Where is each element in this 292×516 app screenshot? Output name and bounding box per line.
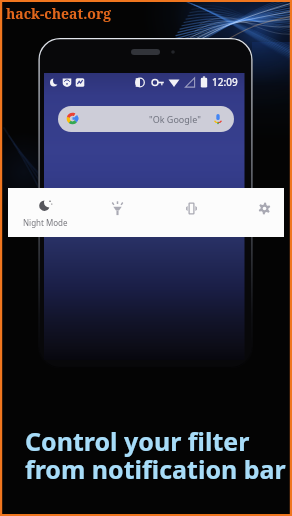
button[interactable]: Settings [239,188,289,237]
button[interactable]: Night Mode [16,188,74,237]
staticText: hack-cheat.org [6,4,112,23]
staticText: "Ok Google" [149,113,201,125]
staticText: 12:09 [212,75,238,89]
staticText: Control your filter from notification ba… [25,424,286,486]
button[interactable]: Flashlight [92,188,142,237]
staticText: Night Mode [23,217,68,228]
button[interactable]: "Ok Google" [58,106,234,132]
button[interactable]: Vibrate [166,188,216,237]
